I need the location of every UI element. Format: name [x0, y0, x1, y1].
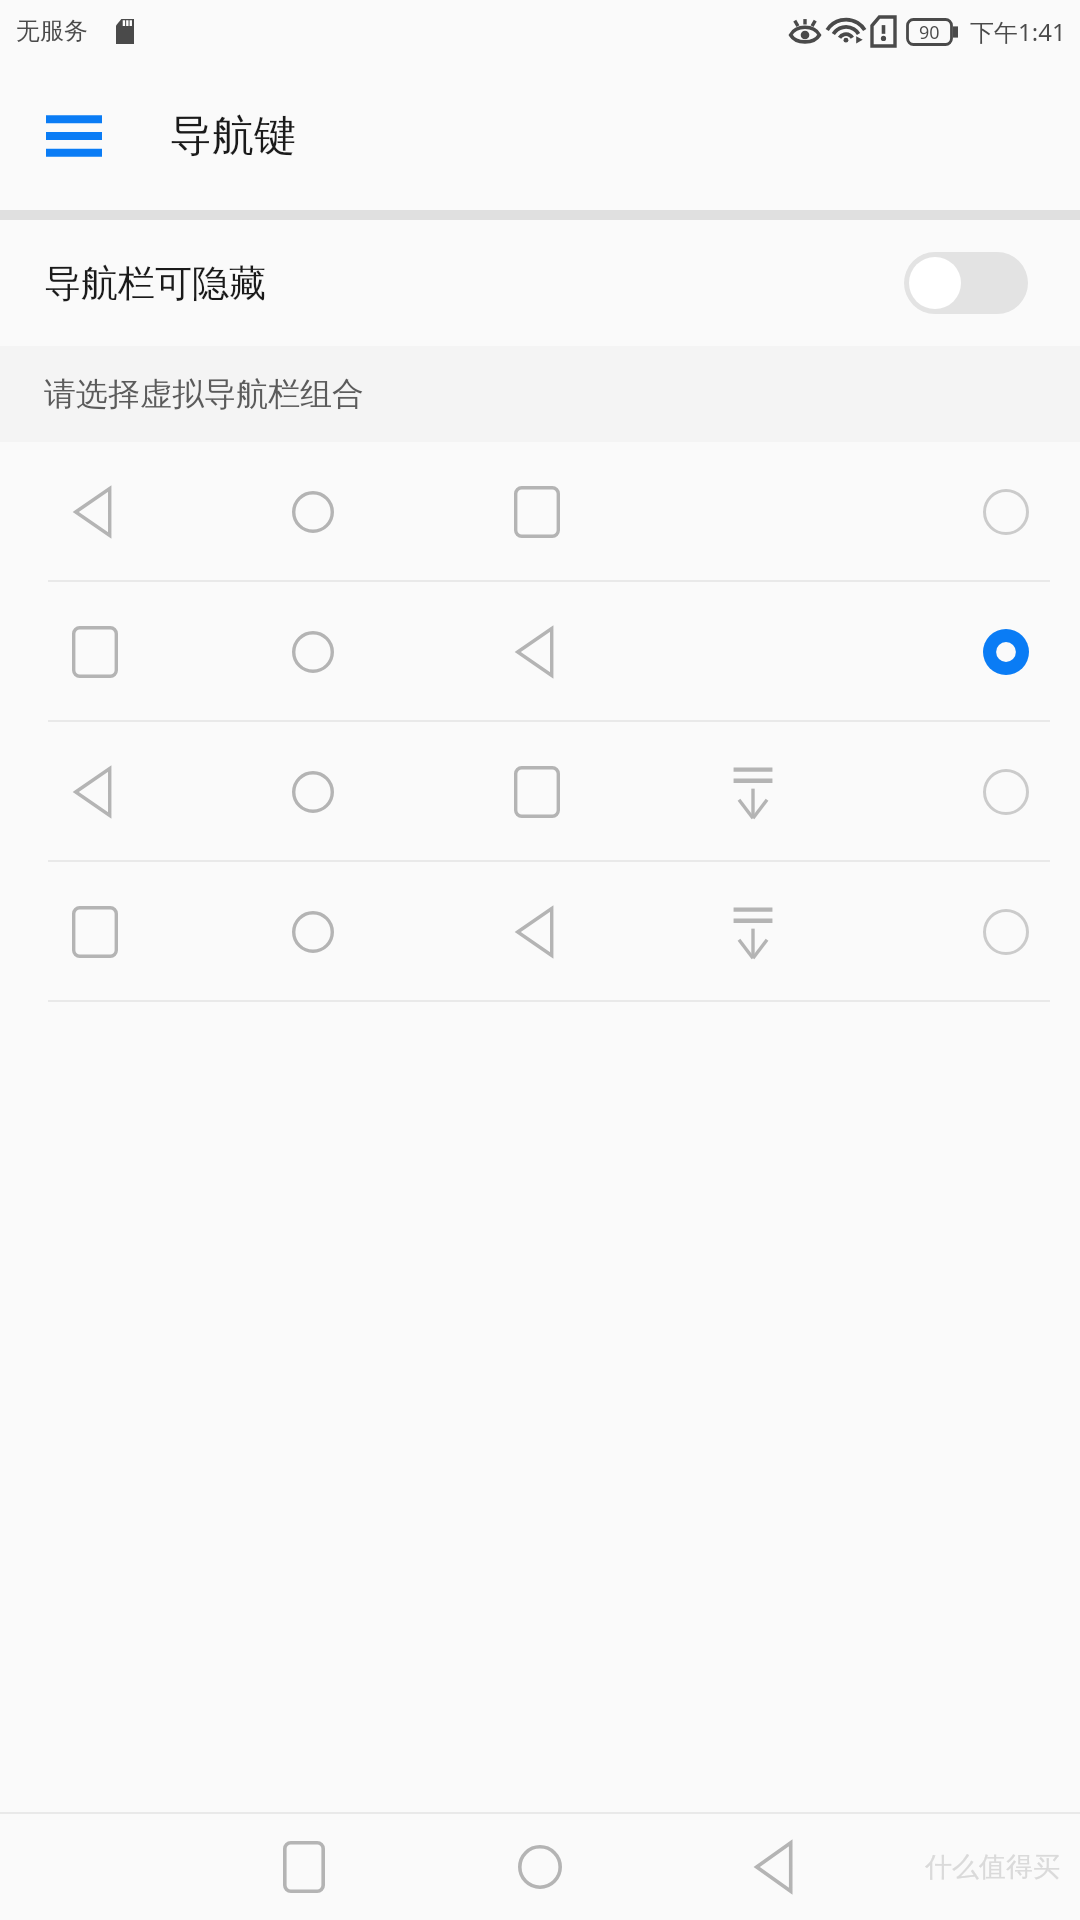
- button[interactable]: Recents: [272, 1835, 336, 1899]
- button[interactable]: Select navigation key layout: [982, 908, 1030, 956]
- button[interactable]: Navigation bar hideable: [904, 252, 1028, 314]
- staticText: 导航栏可隐藏: [44, 260, 266, 307]
- button[interactable]: Select navigation key layout: [0, 862, 1080, 1002]
- staticText: 什么值得买: [925, 1850, 1060, 1884]
- staticText: 导航键: [170, 110, 296, 163]
- button[interactable]: Home: [508, 1835, 572, 1899]
- staticText: 90: [919, 20, 940, 45]
- button[interactable]: Select navigation key layout: [982, 488, 1030, 536]
- button[interactable]: 导航栏可隐藏: [0, 220, 1080, 346]
- button[interactable]: Select navigation key layout: [982, 768, 1030, 816]
- button[interactable]: Menu: [36, 103, 112, 169]
- button[interactable]: Select navigation key layout: [0, 582, 1080, 722]
- staticText: 请选择虚拟导航栏组合: [44, 374, 364, 414]
- button[interactable]: Select navigation key layout: [0, 722, 1080, 862]
- staticText: 无服务: [16, 16, 88, 46]
- button[interactable]: Select navigation key layout: [0, 442, 1080, 582]
- button[interactable]: Select navigation key layout: [982, 628, 1030, 676]
- button[interactable]: Back: [744, 1835, 808, 1899]
- staticText: 下午1:41: [970, 15, 1066, 48]
